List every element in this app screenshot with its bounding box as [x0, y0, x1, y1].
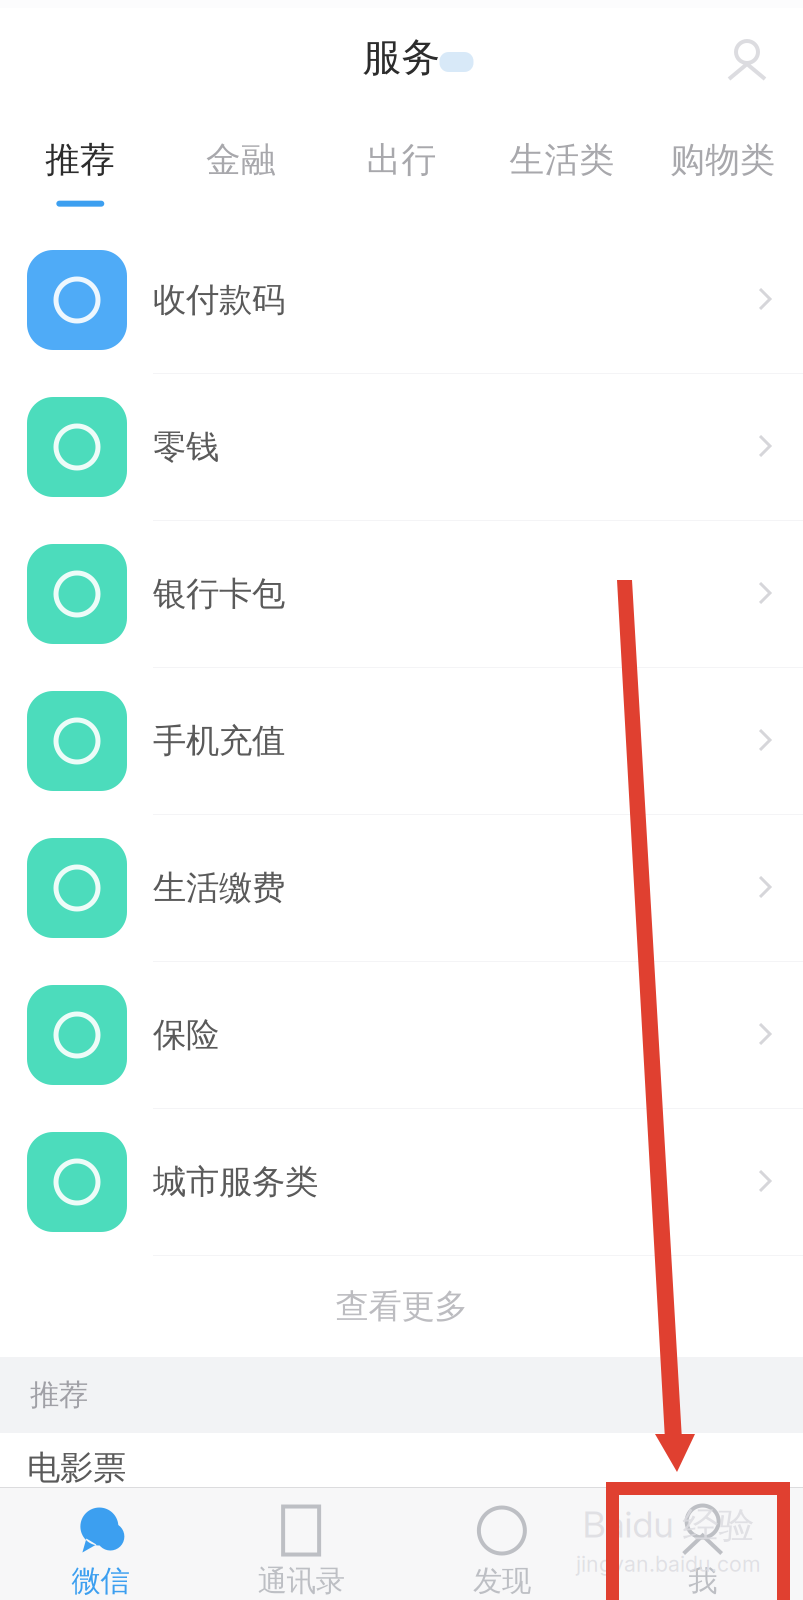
staticText: 收付款码 [153, 279, 285, 321]
button[interactable]: 购物类 [642, 116, 803, 227]
staticText: 手机充值 [153, 720, 285, 762]
staticText: 城市服务类 [153, 1161, 318, 1203]
button[interactable]: 生活类 [482, 116, 642, 227]
staticText: 零钱 [153, 426, 219, 468]
staticText: 购物类 [670, 138, 775, 182]
staticText: 生活缴费 [153, 867, 285, 909]
button[interactable]: 查看更多 [0, 1256, 803, 1357]
button[interactable]: 零钱 [0, 374, 803, 521]
button[interactable]: 生活缴费 [0, 815, 803, 962]
staticText: 我 [688, 1562, 717, 1599]
button[interactable]: Profile [723, 36, 803, 88]
button[interactable]: 出行 [321, 116, 482, 227]
staticText: 银行卡包 [153, 573, 285, 615]
button[interactable]: 银行卡包 [0, 521, 803, 668]
button[interactable]: 微信 [0, 1502, 201, 1599]
staticText: jingyan.baidu.com [576, 1551, 761, 1577]
staticText: 推荐 [45, 138, 115, 182]
staticText: 发现 [473, 1562, 531, 1599]
staticText: 服务 [362, 33, 440, 82]
staticText: 生活类 [510, 138, 615, 182]
staticText: 推荐 [30, 1376, 88, 1413]
button[interactable]: 手机充值 [0, 668, 803, 815]
button[interactable]: 金融 [161, 116, 321, 227]
button[interactable]: 城市服务类 [0, 1109, 803, 1256]
staticText: 电影票 [27, 1447, 126, 1489]
button[interactable]: 收付款码 [0, 227, 803, 374]
staticText: 保险 [153, 1014, 219, 1056]
staticText: 通讯录 [258, 1562, 345, 1599]
staticText: 查看更多 [335, 1285, 467, 1327]
staticText: 金融 [206, 138, 276, 182]
staticText: 微信 [71, 1562, 129, 1599]
staticText: Baidu 经验 [582, 1503, 754, 1548]
button[interactable]: 我 [602, 1502, 803, 1599]
button[interactable]: 通讯录 [201, 1502, 402, 1599]
button[interactable]: 发现 [401, 1502, 602, 1599]
button[interactable]: 保险 [0, 962, 803, 1109]
button[interactable]: 推荐 [0, 116, 161, 227]
staticText: 出行 [366, 138, 436, 182]
